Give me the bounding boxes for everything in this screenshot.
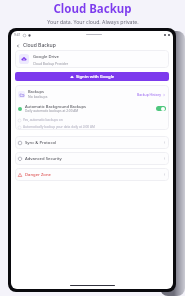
staticText: Sync & Protocol: [25, 140, 57, 146]
staticText: Backups: [28, 89, 45, 94]
staticText: Google Drive: [33, 54, 59, 60]
button[interactable]: Toggle automatic backups: [156, 106, 166, 111]
button[interactable]: Sync & Protocol: [15, 136, 169, 149]
staticText: Cloud Backup Provider: [33, 61, 69, 65]
staticText: Automatic Background Backups: [25, 104, 87, 109]
staticText: Yes, automatic backups on: [23, 118, 63, 122]
staticText: Backup History: [137, 92, 162, 97]
button[interactable]: Back: [14, 42, 21, 49]
staticText: Automatically backup your data daily at …: [23, 125, 95, 129]
staticText: Your data. Your cloud. Always private.: [47, 18, 139, 25]
button[interactable]: Danger Zone: [15, 168, 169, 181]
staticText: 9:41: [14, 33, 21, 37]
button[interactable]: Advanced Security: [15, 152, 169, 165]
staticText: Danger Zone: [25, 172, 51, 178]
staticText: Advanced Security: [25, 156, 62, 162]
button[interactable]: Google Drive: [15, 50, 169, 68]
button[interactable]: Backup History: [136, 91, 166, 98]
staticText: Cloud Backup: [23, 42, 56, 49]
staticText: Cloud Backup: [53, 1, 132, 17]
staticText: Daily automatic backups at 2:00 AM: [25, 109, 79, 113]
staticText: No backups: [28, 94, 48, 99]
button[interactable]: Signin with Google: [15, 72, 169, 81]
staticText: Signin with Google: [76, 74, 115, 80]
